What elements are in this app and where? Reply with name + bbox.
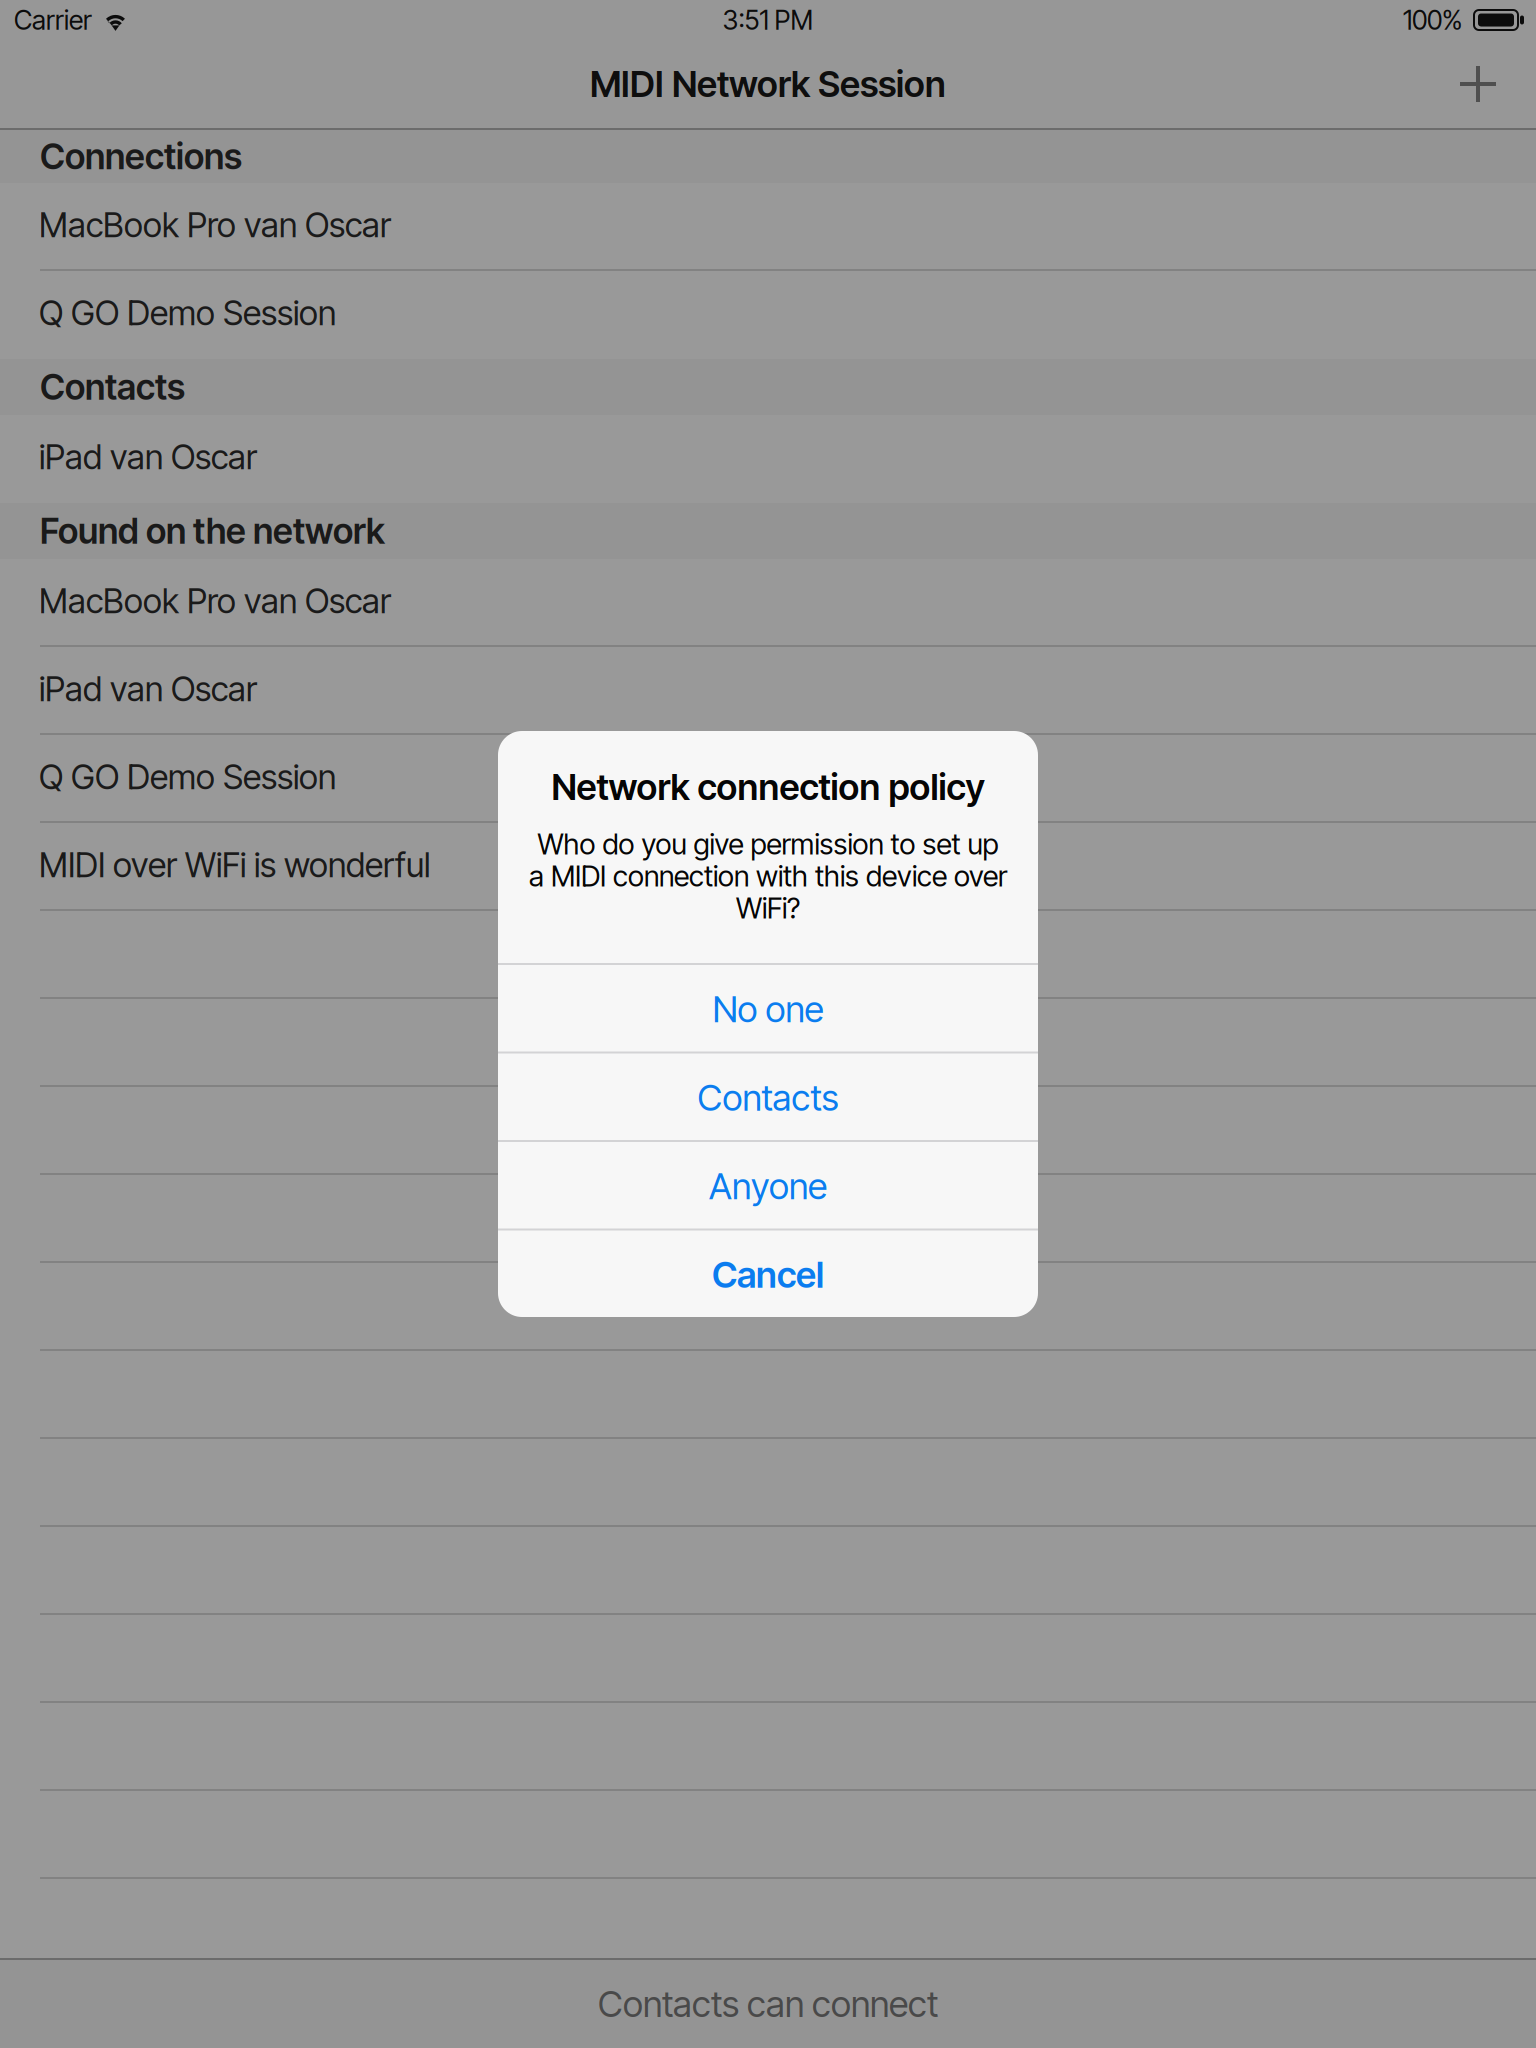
button[interactable]: No one <box>498 965 1038 1051</box>
staticText: WiFi? <box>736 891 800 925</box>
staticText: MacBook Pro van Oscar <box>39 204 391 245</box>
button[interactable]: MIDI over WiFi is wonderful <box>0 823 1536 911</box>
staticText: Contacts <box>697 1076 838 1120</box>
staticText: iPad van Oscar <box>39 436 257 477</box>
staticText: Q GO Demo Session <box>39 292 336 333</box>
button[interactable]: MacBook Pro van Oscar <box>0 559 1536 647</box>
button[interactable]: Anyone <box>498 1142 1038 1228</box>
button[interactable]: Q GO Demo Session <box>0 271 1536 359</box>
button[interactable]: Add session <box>1448 57 1508 111</box>
staticText: a MIDI connection with this device over <box>529 859 1007 893</box>
button[interactable]: iPad van Oscar <box>0 647 1536 735</box>
staticText: 3:51 PM <box>722 4 813 36</box>
staticText: Anyone <box>709 1164 827 1208</box>
button[interactable]: Contacts <box>498 1053 1038 1140</box>
staticText: Network connection policy <box>551 765 984 809</box>
button[interactable]: MacBook Pro van Oscar <box>0 183 1536 271</box>
button[interactable]: Cancel <box>498 1230 1038 1317</box>
staticText: Q GO Demo Session <box>39 756 336 797</box>
staticText: iPad van Oscar <box>39 668 257 709</box>
staticText: Carrier <box>14 4 92 36</box>
staticText: Connections <box>40 135 242 178</box>
staticText: Contacts <box>40 366 185 408</box>
staticText: MacBook Pro van Oscar <box>39 580 391 621</box>
staticText: Who do you give permission to set up <box>537 827 998 861</box>
staticText: MIDI over WiFi is wonderful <box>39 844 430 885</box>
staticText: Contacts can connect <box>598 1982 938 2026</box>
button[interactable]: Q GO Demo Session <box>0 735 1536 823</box>
staticText: 100% <box>1403 4 1462 36</box>
staticText: MIDI Network Session <box>590 62 946 106</box>
staticText: Cancel <box>712 1253 824 1297</box>
staticText: Found on the network <box>40 510 385 552</box>
staticText: No one <box>712 987 823 1031</box>
button[interactable]: iPad van Oscar <box>0 415 1536 503</box>
